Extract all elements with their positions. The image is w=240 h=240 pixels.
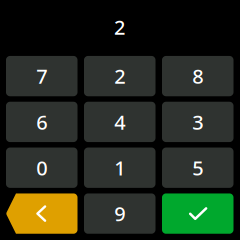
staticText: 5: [192, 154, 203, 181]
button[interactable]: 2: [84, 56, 155, 96]
button[interactable]: 0: [6, 147, 77, 188]
button[interactable]: 8: [162, 56, 233, 96]
staticText: 2: [114, 63, 125, 89]
button[interactable]: 5: [162, 147, 233, 188]
staticText: 4: [114, 109, 125, 135]
button[interactable]: 9: [84, 193, 155, 234]
staticText: 1: [114, 154, 125, 181]
staticText: 0: [36, 154, 47, 181]
button[interactable]: 6: [6, 102, 77, 142]
button[interactable]: 7: [6, 56, 77, 96]
staticText: 9: [114, 200, 125, 227]
staticText: 2: [114, 14, 125, 40]
button[interactable]: 3: [162, 102, 233, 142]
staticText: 7: [36, 63, 47, 89]
staticText: 3: [192, 109, 203, 135]
button[interactable]: Confirm: [162, 193, 233, 234]
button[interactable]: Delete: [6, 193, 77, 234]
staticText: 6: [36, 109, 47, 135]
button[interactable]: 4: [84, 102, 155, 142]
button[interactable]: 1: [84, 147, 155, 188]
staticText: 8: [192, 63, 203, 89]
